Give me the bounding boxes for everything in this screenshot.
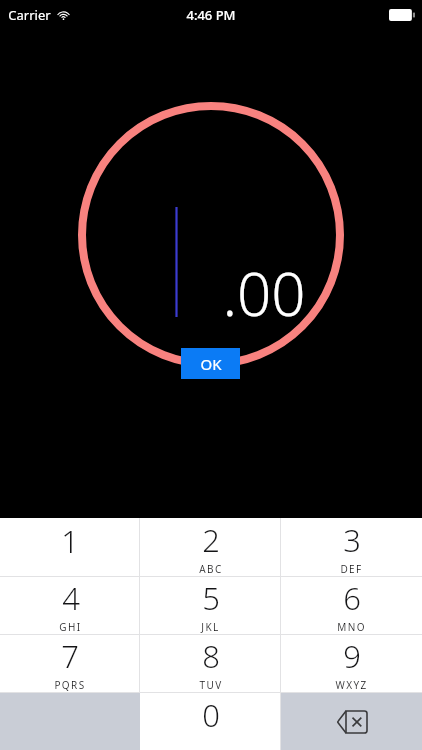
staticText: GHI (59, 620, 82, 634)
button[interactable]: 4 (0, 577, 140, 634)
staticText: WXYZ (335, 678, 368, 692)
staticText: 6 (343, 577, 361, 619)
staticText: 2 (202, 519, 220, 561)
staticText: 4:46 PM (186, 6, 236, 24)
staticText: 9 (343, 635, 361, 677)
button[interactable]: Backspace (281, 693, 422, 750)
button[interactable]: 0 (140, 693, 281, 750)
staticText: 8 (202, 635, 220, 677)
staticText: 7 (61, 635, 79, 677)
button[interactable]: 6 (281, 577, 422, 634)
staticText: .00 (222, 252, 306, 334)
staticText: 0 (202, 694, 220, 736)
staticText: ABC (199, 562, 223, 576)
button[interactable]: OK (181, 348, 240, 379)
staticText: TUV (199, 678, 223, 692)
staticText: OK (200, 354, 222, 374)
button[interactable]: 2 (140, 518, 281, 576)
staticText: Carrier (8, 6, 51, 24)
button[interactable]: 8 (140, 635, 281, 692)
button[interactable]: 7 (0, 635, 140, 692)
staticText: DEF (340, 562, 363, 576)
button[interactable]: 5 (140, 577, 281, 634)
staticText: 3 (343, 519, 361, 561)
staticText: 1 (61, 520, 79, 562)
button[interactable]: 1 (0, 518, 140, 576)
staticText: JKL (201, 620, 220, 634)
staticText: MNO (337, 620, 366, 634)
staticText: 5 (202, 577, 220, 619)
staticText: PQRS (54, 678, 86, 692)
staticText: 4 (62, 577, 80, 619)
button[interactable]: 3 (281, 518, 422, 576)
button[interactable]: 9 (281, 635, 422, 692)
